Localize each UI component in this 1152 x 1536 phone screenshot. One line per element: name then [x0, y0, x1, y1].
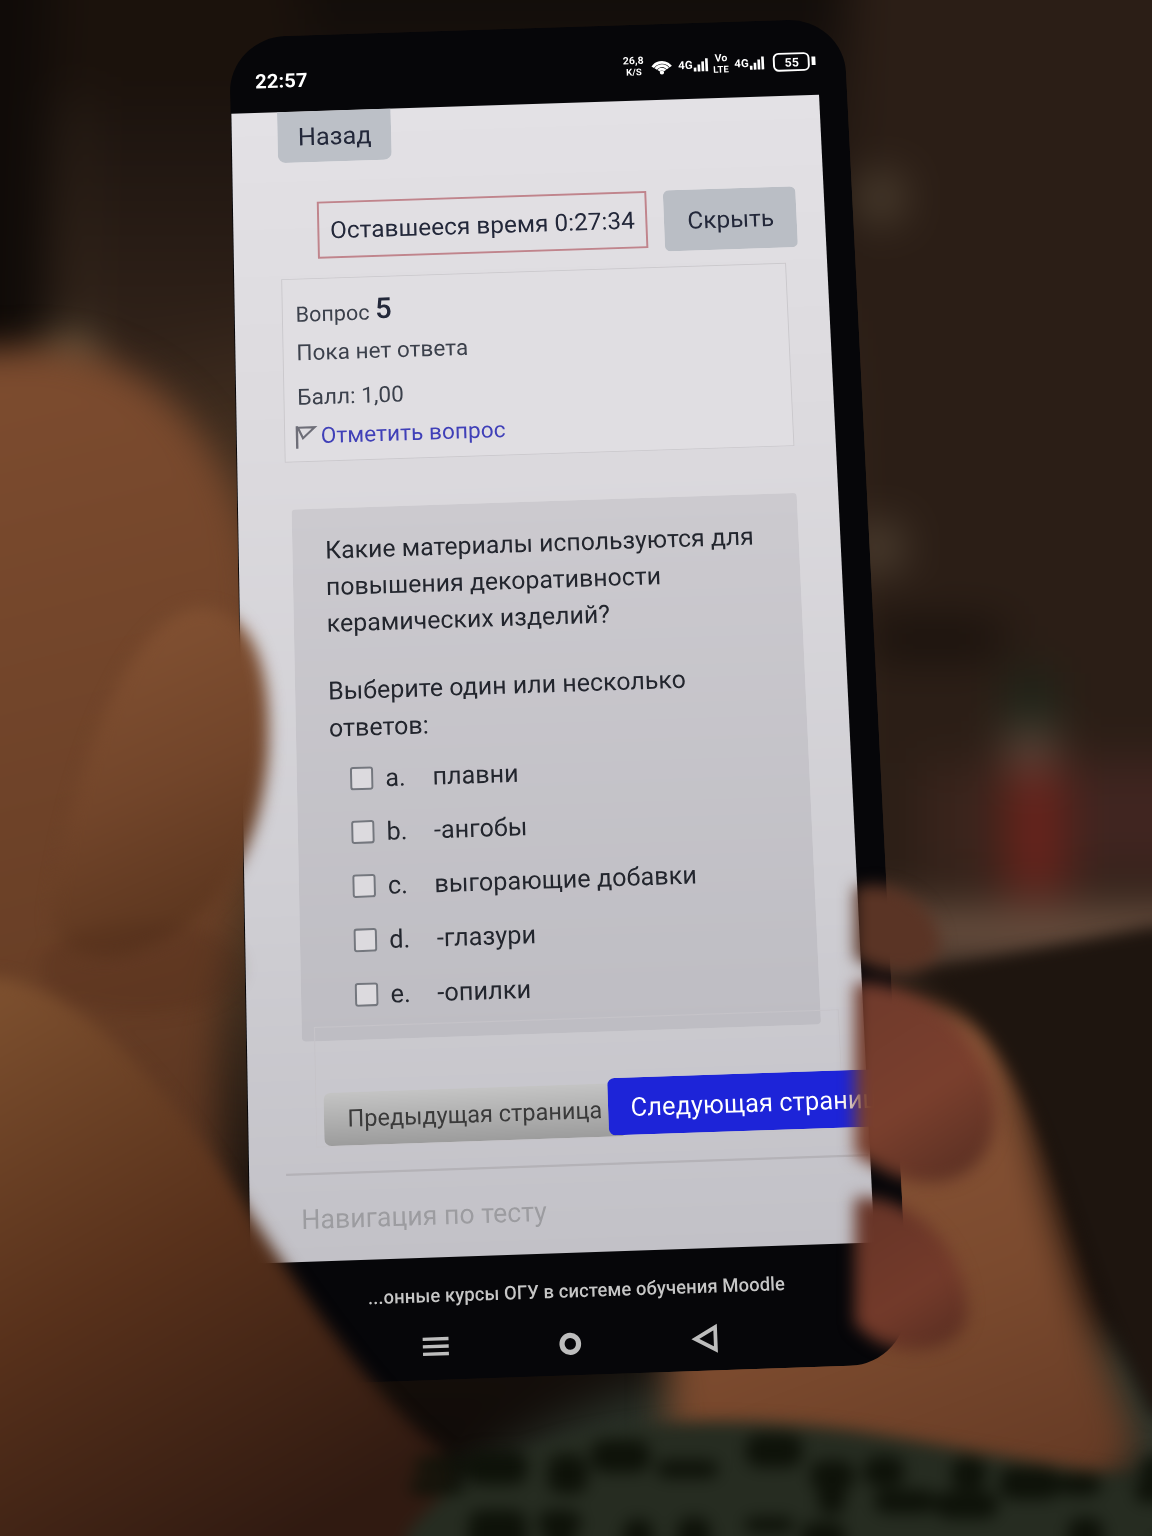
- staticText: плавни: [432, 759, 519, 791]
- staticText: d.: [389, 924, 411, 954]
- button[interactable]: Скрыть: [663, 186, 798, 251]
- button[interactable]: Следующая страниц: [607, 1069, 885, 1136]
- staticText: -ангобы: [434, 812, 528, 844]
- staticText: Оставшееся время 0:27:34: [330, 207, 636, 244]
- staticText: a.: [385, 762, 407, 792]
- button[interactable]: Предыдущая страница: [323, 1083, 627, 1146]
- staticText: 22:57: [255, 69, 309, 94]
- staticText: LTE: [713, 64, 730, 76]
- staticText: 55: [784, 55, 799, 70]
- staticText: Vo: [714, 52, 728, 64]
- staticText: K/S: [626, 67, 643, 78]
- staticText: Отметить вопрос: [320, 417, 507, 449]
- button[interactable]: Навигация по тесту: [249, 1162, 874, 1259]
- button[interactable]: Отметить вопрос: [295, 417, 507, 450]
- button[interactable]: d.: [353, 902, 817, 963]
- staticText: 4G: [678, 58, 694, 72]
- staticText: c.: [387, 870, 408, 900]
- button[interactable]: b.: [351, 794, 812, 854]
- button[interactable]: Recent apps: [408, 1319, 463, 1377]
- button[interactable]: e.: [354, 956, 820, 1017]
- staticText: e.: [390, 978, 411, 1009]
- staticText: Вопрос: [295, 300, 375, 328]
- staticText: b.: [386, 816, 408, 846]
- button[interactable]: a.: [350, 741, 810, 800]
- staticText: Выберите один или несколько ответов:: [328, 665, 688, 743]
- staticText: Пока нет ответа: [296, 335, 469, 366]
- button[interactable]: Оставшееся время 0:27:34: [317, 191, 648, 259]
- button[interactable]: c.: [352, 848, 815, 908]
- staticText: 5: [375, 291, 393, 325]
- staticText: 4G: [734, 57, 750, 70]
- button[interactable]: Back: [676, 1310, 732, 1367]
- staticText: 26,8: [622, 54, 644, 67]
- staticText: Балл: 1,00: [297, 381, 405, 411]
- button[interactable]: Home: [542, 1315, 598, 1372]
- staticText: Предыдущая страница: [347, 1096, 604, 1133]
- button[interactable]: Назад: [277, 109, 392, 163]
- staticText: -опилки: [437, 974, 532, 1007]
- staticText: -глазури: [436, 919, 536, 953]
- staticText: ...онные курсы ОГУ в системе обучения Mo…: [368, 1272, 786, 1309]
- staticText: Какие материалы используются для повышен…: [325, 522, 758, 638]
- staticText: выгорающие добавки: [434, 860, 698, 898]
- staticText: Следующая страниц: [630, 1084, 878, 1122]
- staticText: Навигация по тесту: [301, 1195, 547, 1235]
- staticText: Скрыть: [687, 204, 775, 234]
- staticText: Назад: [298, 120, 372, 151]
